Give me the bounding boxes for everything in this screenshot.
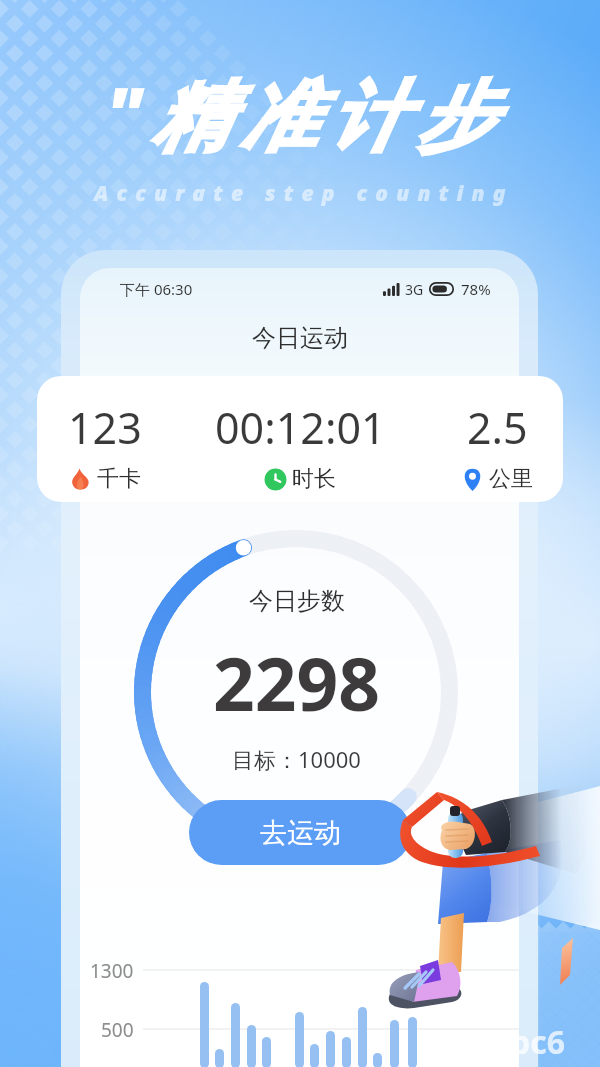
button[interactable]: 2.5 xyxy=(407,398,563,493)
staticText: 00:12:01 xyxy=(215,398,386,457)
staticText: 78% xyxy=(461,279,491,299)
button[interactable]: 去运动 xyxy=(189,800,411,865)
button[interactable]: 123 xyxy=(37,398,195,493)
button[interactable]: 00:12:01 xyxy=(210,398,390,493)
staticText: 时长 xyxy=(292,465,336,493)
staticText: 2.5 xyxy=(467,398,528,457)
staticText: 今日运动 xyxy=(252,323,348,353)
staticText: 千卡 xyxy=(97,465,141,493)
staticText: 3G xyxy=(405,280,424,299)
staticText: 123 xyxy=(68,398,142,457)
staticText: 2298 xyxy=(213,633,381,732)
staticText: pc6 xyxy=(510,1020,566,1064)
staticText: 今日步数 xyxy=(249,586,345,616)
staticText: 去运动 xyxy=(260,816,341,850)
staticText: 1300 xyxy=(90,958,134,984)
staticText: "精准计步 xyxy=(106,62,505,166)
staticText: 下午 06:30 xyxy=(120,279,193,299)
staticText: 500 xyxy=(101,1017,134,1043)
staticText: Accurate step counting xyxy=(94,179,514,208)
staticText: 目标：10000 xyxy=(232,744,361,774)
staticText: 公里 xyxy=(489,465,533,493)
